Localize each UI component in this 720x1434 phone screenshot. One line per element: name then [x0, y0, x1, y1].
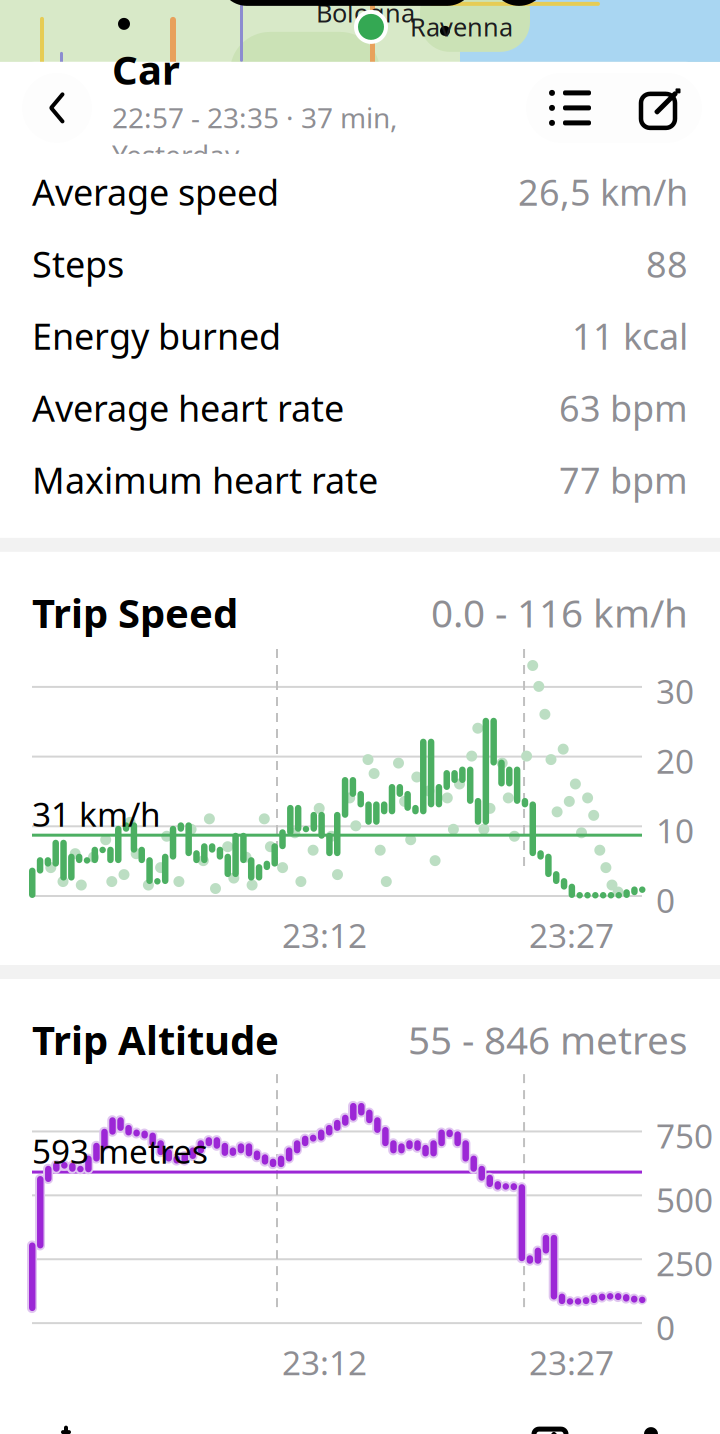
staticText: 10 [656, 808, 694, 853]
staticText: Average heart rate [32, 384, 344, 432]
button[interactable]: List [526, 73, 614, 143]
staticText: 88 [646, 240, 688, 288]
button[interactable]: Notes [500, 1410, 600, 1434]
staticText: Trip Altitude [32, 1013, 279, 1066]
staticText: 23:12 [282, 1340, 367, 1384]
staticText: 63 bpm [559, 384, 688, 432]
staticText: 0 [656, 878, 675, 922]
staticText: 31 km/h [32, 792, 161, 836]
staticText: 593 metres [32, 1129, 208, 1173]
staticText: 55 - 846 metres [408, 1014, 688, 1065]
staticText: 77 bpm [559, 456, 688, 504]
button[interactable]: Location [600, 1410, 700, 1434]
staticText: Trip Speed [32, 586, 238, 639]
staticText: 0 [656, 1305, 675, 1349]
button[interactable]: Insights [24, 1410, 108, 1434]
staticText: 26,5 km/h [518, 168, 688, 216]
staticText: 20 [656, 739, 694, 783]
staticText: Energy burned [32, 312, 281, 360]
staticText: Ravenna [410, 10, 513, 43]
staticText: Genoa [78, 100, 155, 133]
staticText: 22:57 - 23:35 · 37 min, Yesterday [112, 99, 398, 173]
staticText: 11 kcal [572, 312, 688, 360]
staticText: 500 [656, 1177, 713, 1222]
staticText: Car [112, 43, 180, 96]
staticText: 23:27 [529, 1340, 614, 1384]
staticText: 23:12 [282, 913, 367, 957]
staticText: Average speed [32, 168, 279, 216]
button[interactable]: Edit [614, 73, 702, 143]
button[interactable]: Back [22, 73, 92, 143]
staticText: 750 [656, 1113, 713, 1158]
staticText: Maximum heart rate [32, 456, 378, 504]
staticText: 30 [656, 669, 694, 713]
staticText: 250 [656, 1241, 713, 1285]
staticText: Steps [32, 240, 124, 288]
staticText: 0.0 - 116 km/h [431, 587, 688, 638]
staticText: 23:27 [529, 913, 614, 957]
staticText: Bologna [316, 0, 415, 29]
